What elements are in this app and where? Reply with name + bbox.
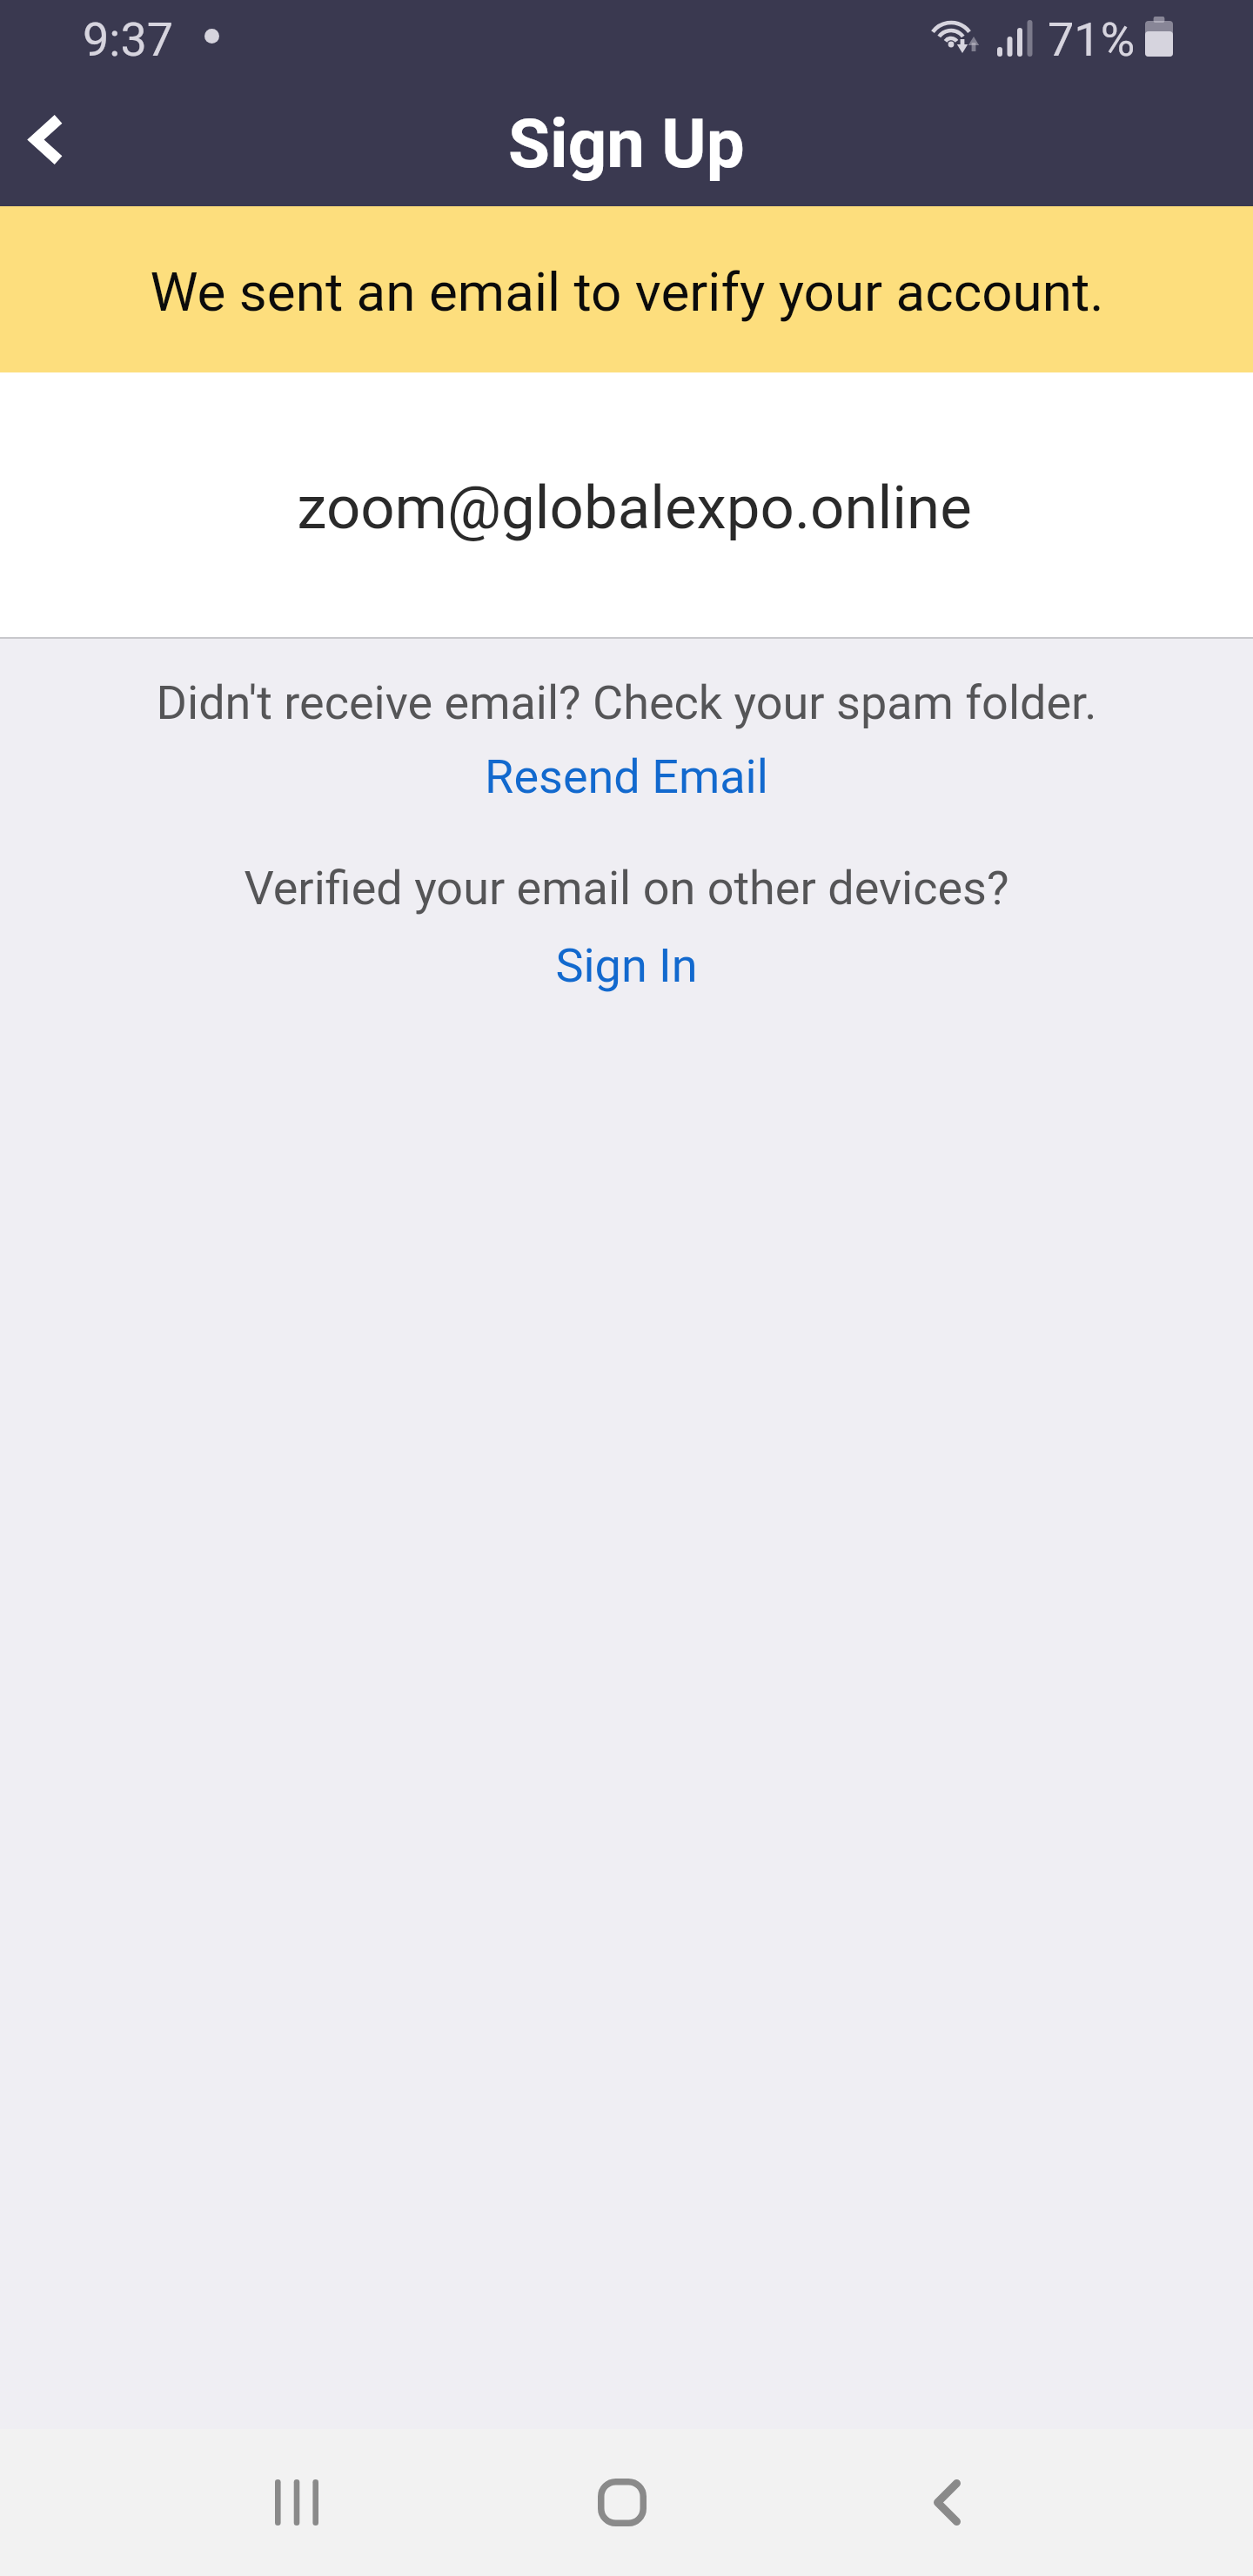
staticText: Verified your email on other devices? [0,861,1253,916]
staticText: Didn't receive email? Check your spam fo… [0,675,1253,730]
staticText: Sign Up [508,104,745,184]
staticText: zoom@globalexpo.online [297,473,972,543]
staticText: 71% [1048,12,1136,67]
button[interactable]: Back [879,2429,1018,2576]
staticText: We sent an email to verify your account. [150,260,1104,324]
button[interactable]: Resend Email [467,746,786,808]
button[interactable]: Home [553,2429,692,2576]
staticText: Resend Email [485,749,768,804]
staticText: Sign In [555,938,698,993]
button[interactable]: Recent apps [226,2429,365,2576]
button[interactable]: Back [0,84,108,206]
staticText: 9:37 [83,12,174,67]
button[interactable]: Sign In [538,935,715,996]
